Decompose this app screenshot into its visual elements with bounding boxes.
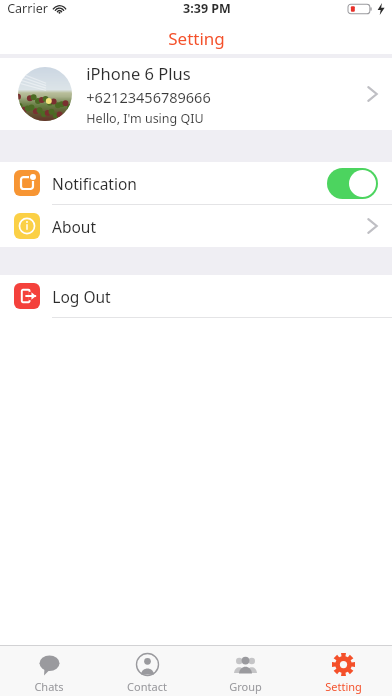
staticText: Group xyxy=(229,679,262,694)
staticText: Chats xyxy=(34,679,64,694)
button[interactable]: About xyxy=(0,205,392,247)
staticText: Notification xyxy=(52,173,137,194)
staticText: Log Out xyxy=(52,286,111,307)
staticText: Contact xyxy=(127,679,167,694)
staticText: About xyxy=(52,216,96,237)
staticText: 3:39 PM xyxy=(183,0,231,17)
button[interactable]: Log Out xyxy=(0,275,392,317)
staticText: Carrier xyxy=(7,0,48,17)
staticText: iPhone 6 Plus xyxy=(86,62,191,84)
button[interactable]: iPhone 6 Plus xyxy=(0,58,392,130)
button[interactable]: Notification toggle xyxy=(327,168,378,199)
button[interactable]: Setting xyxy=(294,648,392,694)
staticText: Setting xyxy=(168,27,225,50)
staticText: +62123456789666 xyxy=(86,87,211,107)
staticText: Setting xyxy=(325,679,362,694)
button[interactable]: Chats xyxy=(0,648,98,694)
button[interactable]: Group xyxy=(196,648,294,694)
staticText: Hello, I'm using QIU xyxy=(86,110,204,127)
button[interactable]: Notification xyxy=(0,162,392,204)
button[interactable]: Contact xyxy=(98,648,196,694)
